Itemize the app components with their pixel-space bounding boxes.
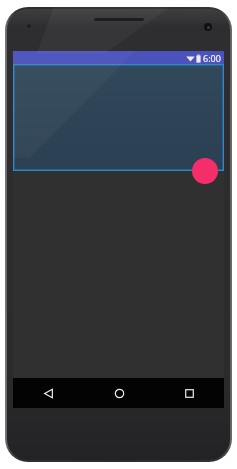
button[interactable]: Add — [192, 158, 218, 184]
button[interactable]: Home — [84, 378, 154, 408]
button[interactable]: Back — [13, 378, 84, 408]
staticText: 6:00 — [203, 52, 221, 64]
button[interactable] — [13, 64, 224, 171]
button[interactable]: Recent apps — [154, 378, 224, 408]
